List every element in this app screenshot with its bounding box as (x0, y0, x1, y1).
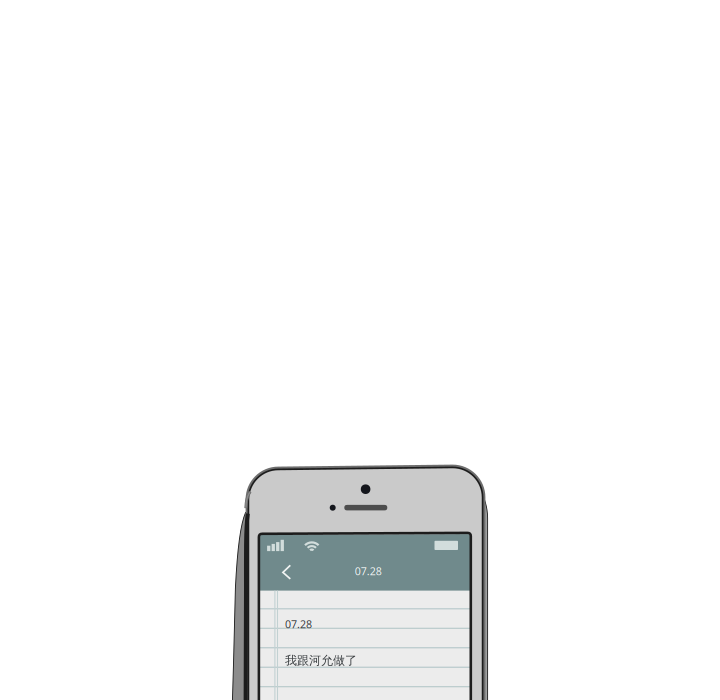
staticText: 07.28 (285, 617, 312, 631)
staticText: 我跟河允做了 (285, 653, 357, 668)
staticText: 07.28 (355, 564, 382, 578)
button[interactable]: Back (0, 0, 720, 700)
